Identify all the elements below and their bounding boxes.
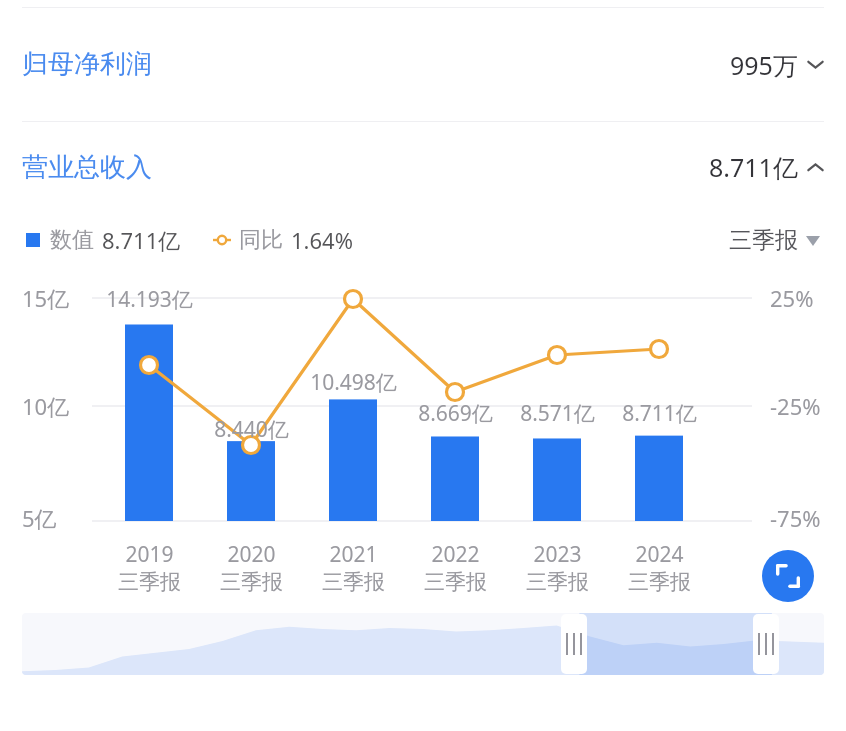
staticText: 同比 — [239, 226, 283, 254]
staticText: 三季报 — [220, 569, 283, 595]
staticText: 2021 — [329, 540, 378, 569]
staticText: 10.498亿 — [310, 368, 397, 397]
staticText: 三季报 — [628, 569, 691, 595]
staticText: 10亿 — [22, 391, 70, 421]
staticText: 8.711亿 — [102, 225, 181, 255]
staticText: 2022 — [431, 540, 480, 569]
staticText: 1.64% — [291, 225, 353, 255]
staticText: 三季报 — [424, 569, 487, 595]
staticText: -25% — [770, 391, 821, 421]
staticText: -75% — [770, 503, 821, 533]
staticText: 8.669亿 — [418, 399, 493, 428]
staticText: 营业总收入 — [22, 151, 152, 184]
staticText: 2023 — [533, 540, 582, 569]
staticText: 8.440亿 — [214, 415, 289, 444]
staticText: 三季报 — [729, 226, 798, 255]
staticText: 归母净利润 — [22, 48, 152, 81]
staticText: 2024 — [635, 540, 684, 569]
button[interactable]: 营业总收入 — [0, 122, 846, 212]
staticText: 2020 — [227, 540, 276, 569]
staticText: 三季报 — [118, 569, 181, 595]
button[interactable]: Range start handle — [561, 614, 587, 674]
button[interactable]: 归母净利润 — [0, 8, 846, 121]
button[interactable]: 三季报 — [729, 226, 820, 255]
button[interactable]: Range end handle — [753, 614, 779, 674]
staticText: 数值 — [50, 226, 94, 254]
staticText: 8.711亿 — [709, 150, 798, 184]
button[interactable]: Expand chart — [762, 550, 814, 602]
staticText: 5亿 — [22, 503, 57, 533]
staticText: 14.193亿 — [106, 285, 193, 314]
staticText: 15亿 — [22, 283, 70, 313]
staticText: 2019 — [125, 540, 174, 569]
button[interactable]: Range start handle — [22, 613, 824, 675]
staticText: 8.711亿 — [622, 399, 697, 428]
staticText: 三季报 — [322, 569, 385, 595]
staticText: 8.571亿 — [520, 399, 595, 428]
staticText: 25% — [770, 283, 814, 313]
staticText: 三季报 — [526, 569, 589, 595]
staticText: 995万 — [730, 48, 798, 82]
